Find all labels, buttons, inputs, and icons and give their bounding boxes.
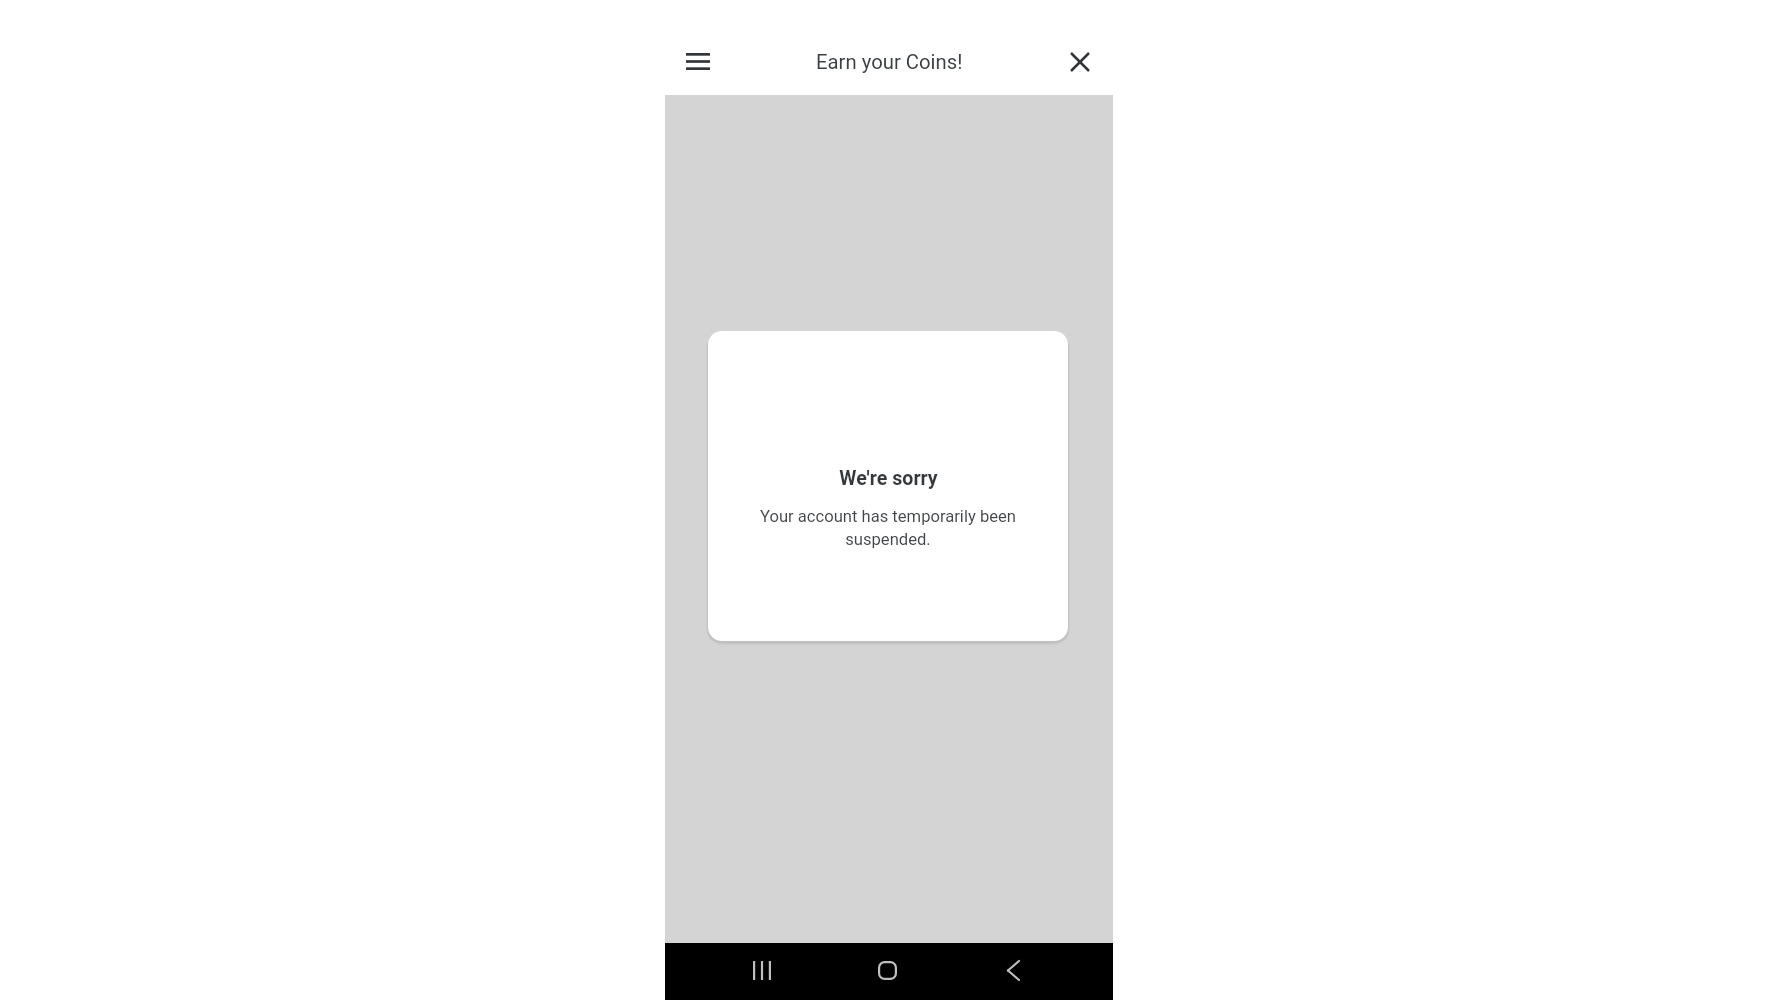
button[interactable]: Close — [1056, 38, 1104, 86]
staticText: Earn your Coins! — [816, 50, 963, 74]
button[interactable]: Back — [989, 943, 1037, 1000]
button[interactable]: Home — [863, 943, 911, 1000]
staticText: Your account has temporarily been suspen… — [730, 507, 1046, 549]
button[interactable]: Recent apps — [738, 943, 786, 1000]
staticText: We're sorry — [839, 467, 938, 490]
button[interactable]: Open navigation menu — [674, 38, 722, 86]
